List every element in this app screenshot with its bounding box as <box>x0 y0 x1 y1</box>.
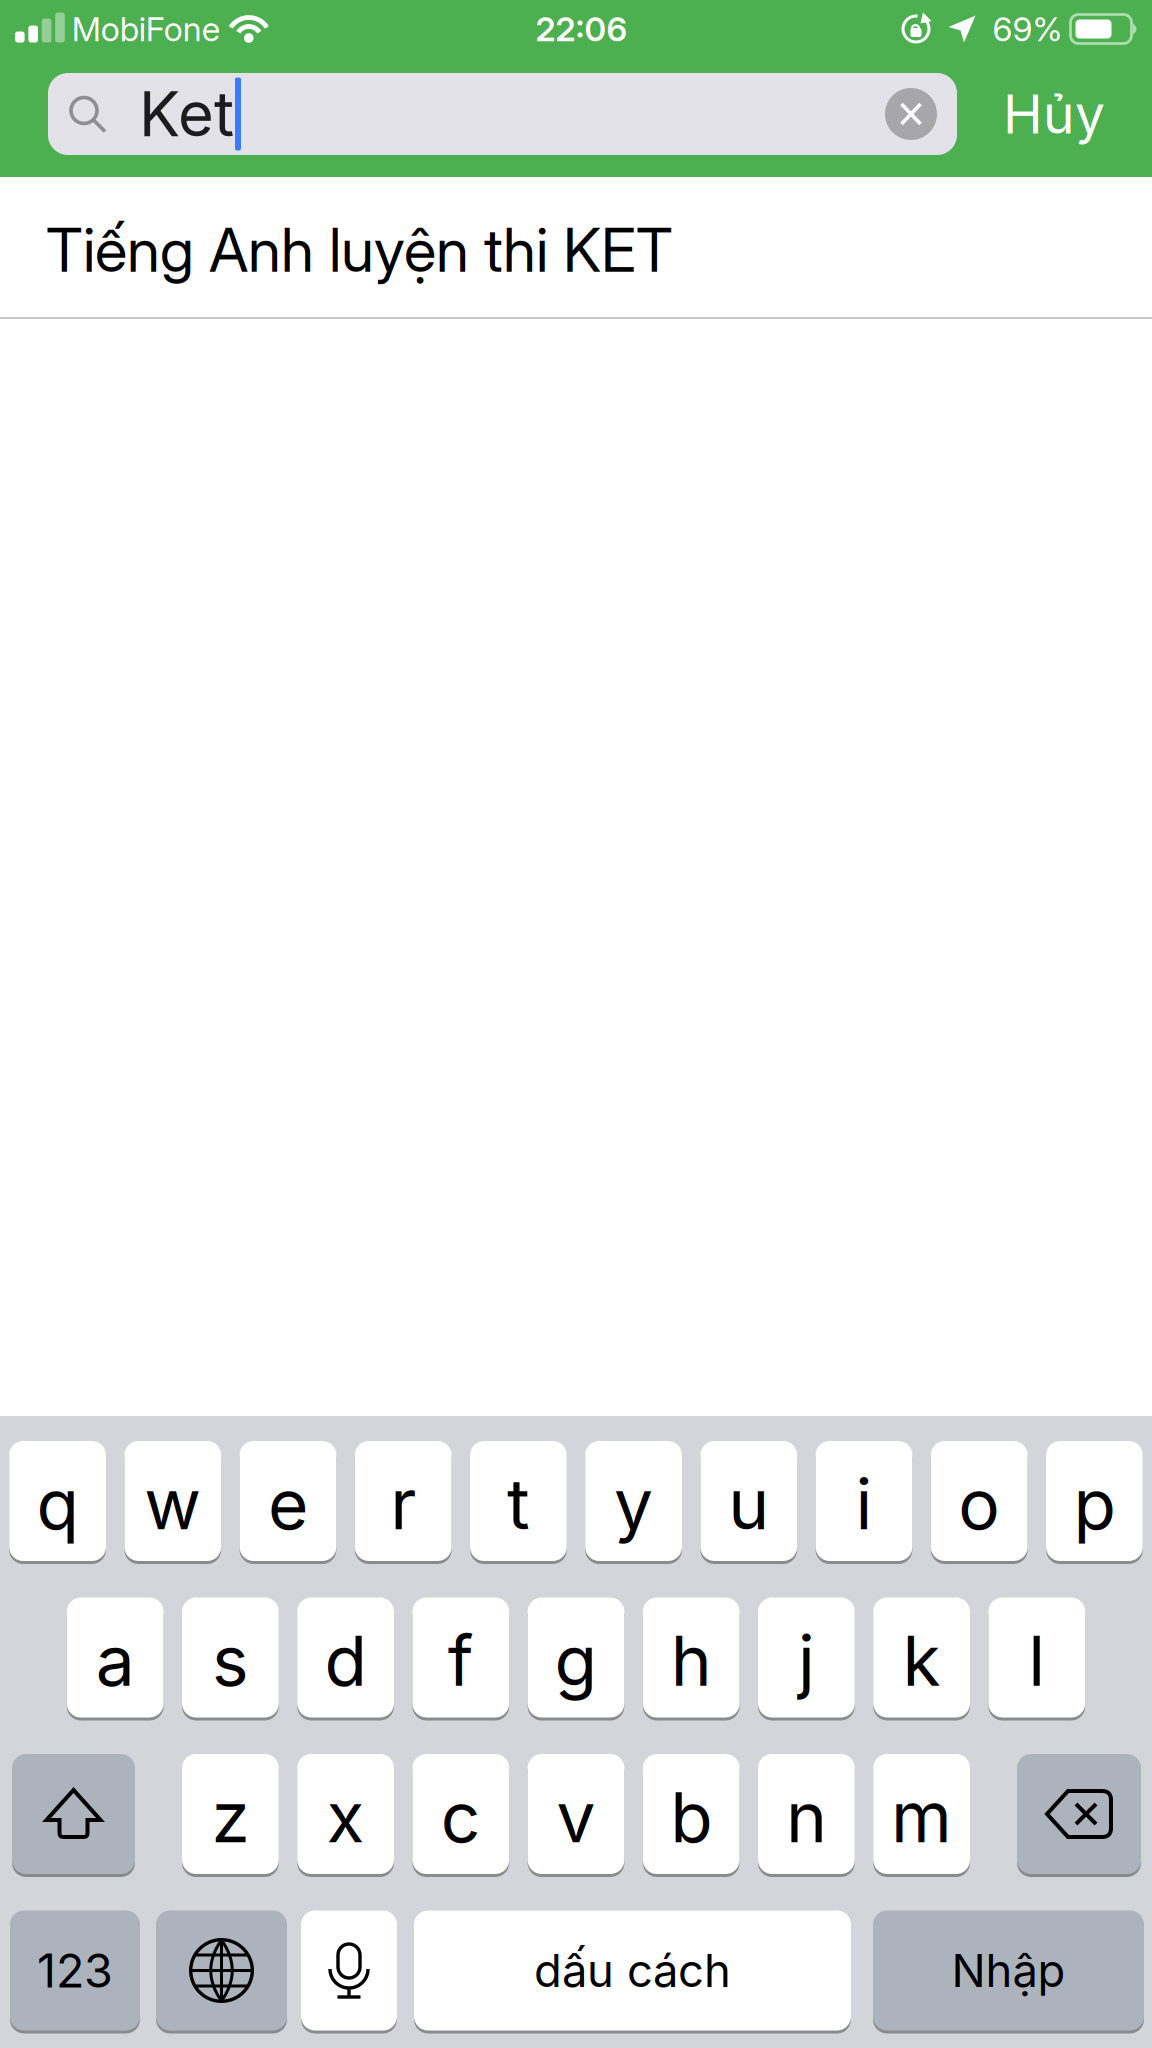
button[interactable]: r <box>355 1441 452 1561</box>
button[interactable]: Tiếng Anh luyện thi KET <box>0 177 1152 319</box>
staticText: i <box>855 1463 872 1545</box>
button[interactable]: a <box>67 1597 164 1717</box>
staticText: Nhập <box>951 1944 1065 1997</box>
button[interactable]: Dictation <box>301 1910 397 2030</box>
button[interactable]: j <box>758 1597 855 1717</box>
button[interactable]: i <box>816 1441 912 1561</box>
button[interactable]: h <box>643 1597 740 1717</box>
button[interactable]: f <box>412 1597 509 1717</box>
staticText: y <box>614 1463 653 1545</box>
staticText: Hủy <box>1003 82 1105 145</box>
button[interactable]: Clear text <box>885 88 957 140</box>
button[interactable]: t <box>470 1441 567 1561</box>
staticText: l <box>1028 1620 1045 1701</box>
staticText: q <box>37 1463 79 1545</box>
staticText: k <box>903 1620 941 1701</box>
staticText: s <box>212 1620 249 1701</box>
button[interactable]: Delete <box>1017 1754 1141 1874</box>
staticText: u <box>728 1463 769 1545</box>
staticText: 123 <box>37 1943 113 1998</box>
staticText: f <box>448 1620 474 1701</box>
button[interactable]: k <box>873 1597 970 1717</box>
staticText: n <box>786 1776 827 1858</box>
staticText: o <box>958 1463 1000 1545</box>
staticText: c <box>441 1776 481 1858</box>
staticText: 69% <box>992 9 1062 49</box>
button[interactable]: d <box>297 1597 394 1717</box>
staticText: Ket <box>139 78 234 150</box>
button[interactable]: dấu cách <box>414 1910 851 2030</box>
button[interactable]: Hủy <box>957 82 1105 145</box>
button[interactable]: b <box>643 1754 740 1874</box>
button[interactable]: q <box>9 1441 106 1561</box>
button[interactable]: s <box>182 1597 279 1717</box>
button[interactable]: u <box>700 1441 797 1561</box>
button[interactable]: o <box>931 1441 1028 1561</box>
button[interactable]: y <box>585 1441 682 1561</box>
button[interactable]: Search <box>48 73 957 155</box>
staticText: m <box>891 1776 952 1858</box>
button[interactable]: 123 <box>10 1910 140 2030</box>
button[interactable]: m <box>873 1754 970 1874</box>
staticText: MobiFone <box>72 9 220 49</box>
staticText: v <box>556 1776 595 1858</box>
staticText: dấu cách <box>534 1944 731 1997</box>
staticText: t <box>507 1463 530 1545</box>
button[interactable]: e <box>240 1441 336 1561</box>
staticText: b <box>670 1776 712 1858</box>
button[interactable]: l <box>988 1597 1085 1717</box>
staticText: e <box>268 1463 308 1545</box>
button[interactable]: Shift <box>12 1754 135 1874</box>
staticText: w <box>144 1463 201 1545</box>
staticText: g <box>554 1620 597 1701</box>
staticText: r <box>390 1463 416 1545</box>
button[interactable]: x <box>297 1754 394 1874</box>
staticText: p <box>1073 1463 1115 1545</box>
staticText: Tiếng Anh luyện thi KET <box>46 214 673 286</box>
button[interactable]: n <box>758 1754 855 1874</box>
button[interactable]: w <box>124 1441 221 1561</box>
button[interactable]: z <box>182 1754 279 1874</box>
staticText: a <box>96 1620 135 1701</box>
staticText: x <box>327 1776 365 1858</box>
staticText: d <box>325 1620 367 1701</box>
button[interactable]: g <box>528 1597 624 1717</box>
button[interactable]: Nhập <box>873 1910 1144 2030</box>
button[interactable]: Next keyboard <box>156 1910 287 2030</box>
staticText: 22:06 <box>535 9 627 49</box>
staticText: z <box>211 1776 249 1858</box>
button[interactable]: p <box>1046 1441 1143 1561</box>
staticText: j <box>798 1620 815 1701</box>
staticText: h <box>671 1620 712 1701</box>
button[interactable]: v <box>528 1754 624 1874</box>
button[interactable]: c <box>412 1754 509 1874</box>
